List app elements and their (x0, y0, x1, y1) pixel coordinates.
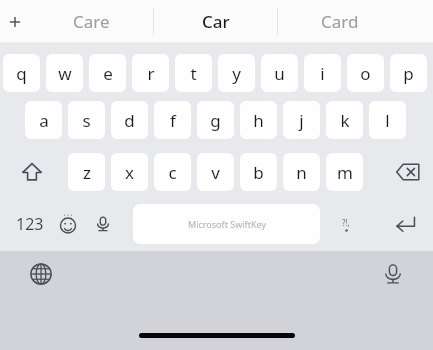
staticText: p (403, 62, 414, 85)
staticText: u (274, 62, 285, 85)
button[interactable]: Shift (10, 153, 54, 191)
button[interactable]: f (154, 101, 191, 139)
button[interactable]: g (197, 101, 234, 139)
button[interactable]: h (240, 101, 277, 139)
button[interactable]: r (132, 54, 169, 92)
button[interactable]: Microsoft SwiftKey (133, 204, 320, 244)
staticText: g (210, 109, 221, 132)
staticText: c (168, 161, 177, 184)
button[interactable]: m (326, 153, 363, 191)
button[interactable]: p (390, 54, 427, 92)
button[interactable]: Voice typing (374, 255, 412, 293)
staticText: Care (73, 10, 110, 33)
button[interactable]: Care (30, 0, 153, 43)
staticText: b (253, 161, 264, 184)
button[interactable]: Card (278, 0, 401, 43)
staticText: s (82, 109, 91, 132)
button[interactable]: Emoji (52, 204, 84, 244)
button[interactable]: y (218, 54, 255, 92)
button[interactable]: b (240, 153, 277, 191)
button[interactable]: n (283, 153, 320, 191)
button[interactable]: Symbols (328, 204, 364, 244)
button[interactable]: s (68, 101, 105, 139)
staticText: j (299, 109, 304, 132)
button[interactable]: a (25, 101, 62, 139)
staticText: z (83, 161, 91, 184)
button[interactable]: Car (154, 0, 277, 43)
staticText: x (125, 161, 134, 184)
button[interactable]: Change language (22, 255, 60, 293)
button[interactable]: Enter (382, 204, 428, 244)
button[interactable]: Backspace (386, 153, 430, 191)
button[interactable]: v (197, 153, 234, 191)
staticText: r (147, 62, 155, 85)
button[interactable]: e (89, 54, 126, 92)
staticText: l (385, 109, 390, 132)
staticText: m (337, 161, 353, 184)
button[interactable]: z (68, 153, 105, 191)
staticText: ?!, (342, 217, 350, 228)
staticText: h (253, 109, 264, 132)
staticText: t (190, 62, 197, 85)
staticText: n (296, 161, 307, 184)
button[interactable]: d (111, 101, 148, 139)
staticText: d (124, 109, 135, 132)
staticText: f (170, 109, 176, 132)
staticText: v (211, 161, 220, 184)
staticText: a (39, 109, 49, 132)
staticText: e (103, 62, 113, 85)
staticText: y (232, 62, 241, 85)
staticText: 123 (16, 213, 44, 235)
button[interactable]: Add (0, 0, 30, 43)
button[interactable]: u (261, 54, 298, 92)
button[interactable]: j (283, 101, 320, 139)
button[interactable]: t (175, 54, 212, 92)
button[interactable]: q (3, 54, 40, 92)
button[interactable]: o (347, 54, 384, 92)
button[interactable]: 123 (2, 204, 58, 244)
staticText: w (58, 62, 72, 85)
staticText: q (16, 62, 27, 85)
button[interactable]: Voice input (88, 204, 118, 244)
staticText: k (340, 109, 350, 132)
button[interactable]: w (46, 54, 83, 92)
staticText: Card (321, 10, 359, 33)
staticText: o (360, 62, 371, 85)
button[interactable]: x (111, 153, 148, 191)
button[interactable]: i (304, 54, 341, 92)
staticText: i (320, 62, 325, 85)
button[interactable]: c (154, 153, 191, 191)
button[interactable]: l (369, 101, 406, 139)
staticText: Car (202, 10, 230, 33)
staticText: Microsoft SwiftKey (188, 218, 266, 230)
button[interactable]: k (326, 101, 363, 139)
